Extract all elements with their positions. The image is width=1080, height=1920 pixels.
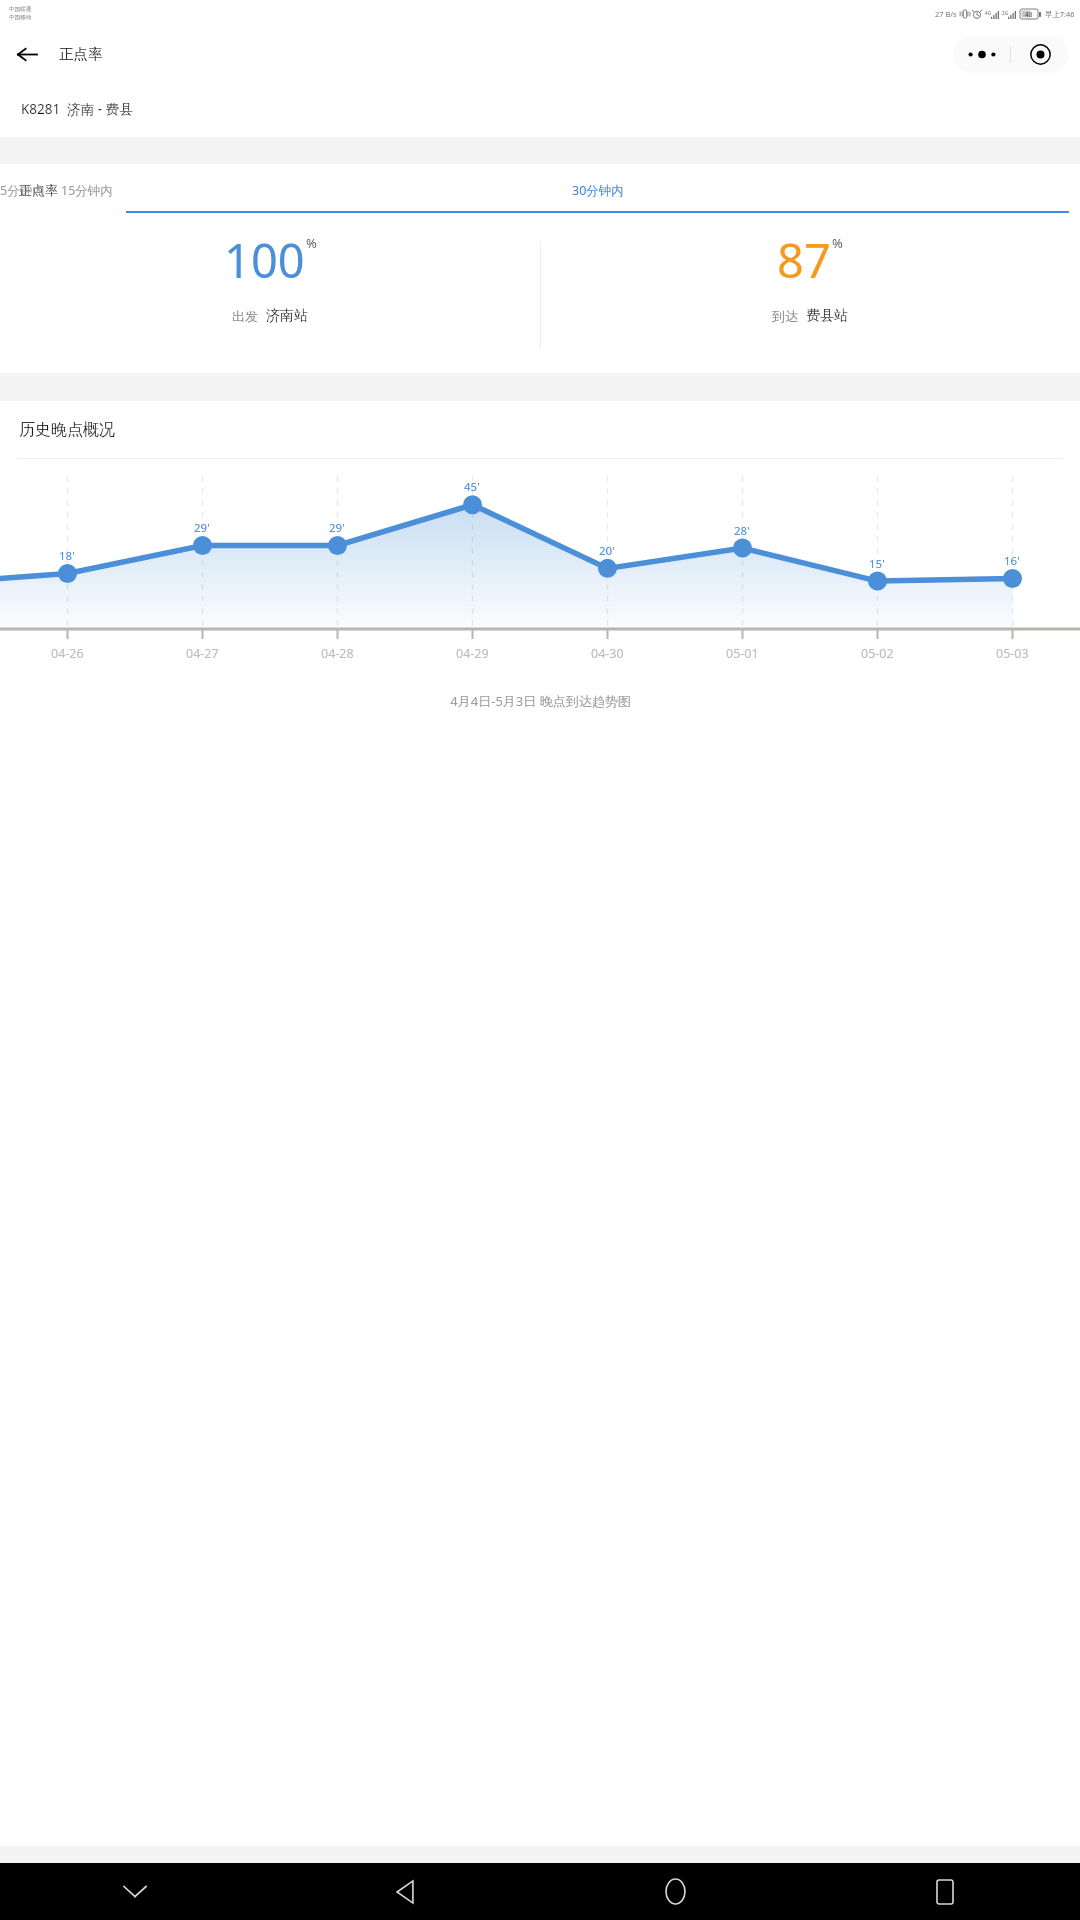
staticText: 45' bbox=[464, 479, 480, 495]
staticText: 正点率 bbox=[19, 182, 58, 198]
staticText: 出发 bbox=[232, 308, 258, 324]
staticText: 2G bbox=[1002, 10, 1008, 16]
staticText: 正点率 bbox=[59, 45, 103, 63]
staticText: 04-28 bbox=[321, 645, 354, 662]
staticText: 28' bbox=[734, 523, 750, 539]
staticText: 05-01 bbox=[726, 645, 759, 662]
staticText: 04-29 bbox=[456, 645, 489, 662]
button[interactable]: 最近任务 bbox=[810, 1863, 1080, 1920]
staticText: % bbox=[832, 234, 843, 252]
staticText: 05-02 bbox=[861, 645, 894, 662]
staticText: 中国联通 bbox=[9, 6, 32, 13]
staticText: 04-27 bbox=[186, 645, 219, 662]
staticText: 48 bbox=[1025, 10, 1033, 19]
staticText: 04-30 bbox=[591, 645, 624, 662]
staticText: 04-26 bbox=[51, 645, 84, 662]
staticText: % bbox=[306, 234, 317, 252]
staticText: 到达 bbox=[772, 308, 798, 324]
button[interactable]: 15分钟内 bbox=[61, 164, 113, 216]
button[interactable]: 30分钟内 bbox=[126, 164, 1069, 216]
staticText: 27 B/s bbox=[935, 9, 957, 19]
button[interactable]: 返回 bbox=[270, 1863, 540, 1920]
staticText: 中国移动 bbox=[9, 14, 32, 21]
button[interactable]: 返回 bbox=[13, 40, 41, 68]
staticText: 费县站 bbox=[806, 307, 848, 325]
staticText: 4G bbox=[985, 10, 991, 16]
staticText: 济南站 bbox=[266, 307, 308, 325]
staticText: 历史晚点概况 bbox=[19, 420, 115, 440]
staticText: 30分钟内 bbox=[572, 182, 624, 199]
staticText: K8281 济南 - 费县 bbox=[21, 100, 133, 118]
staticText: 18' bbox=[59, 548, 75, 564]
staticText: 15分钟内 bbox=[61, 182, 113, 199]
staticText: 5分钟内 bbox=[0, 182, 45, 199]
staticText: 16' bbox=[1004, 553, 1020, 569]
staticText: 早上7:46 bbox=[1045, 9, 1075, 19]
staticText: 4月4日-5月3日 晚点到达趋势图 bbox=[450, 692, 631, 710]
staticText: 29' bbox=[329, 520, 345, 536]
button[interactable]: 5分钟内 bbox=[0, 164, 45, 216]
button[interactable]: 关闭 bbox=[1011, 36, 1069, 73]
staticText: 100 bbox=[224, 228, 305, 292]
button[interactable]: 主页 bbox=[540, 1863, 810, 1920]
staticText: 20' bbox=[599, 543, 615, 559]
button[interactable]: 收起 bbox=[0, 1863, 270, 1920]
button[interactable]: 更多 bbox=[953, 36, 1010, 73]
staticText: 29' bbox=[194, 520, 210, 536]
staticText: 15' bbox=[869, 556, 885, 572]
staticText: 05-03 bbox=[996, 645, 1029, 662]
staticText: 87 bbox=[777, 228, 831, 292]
